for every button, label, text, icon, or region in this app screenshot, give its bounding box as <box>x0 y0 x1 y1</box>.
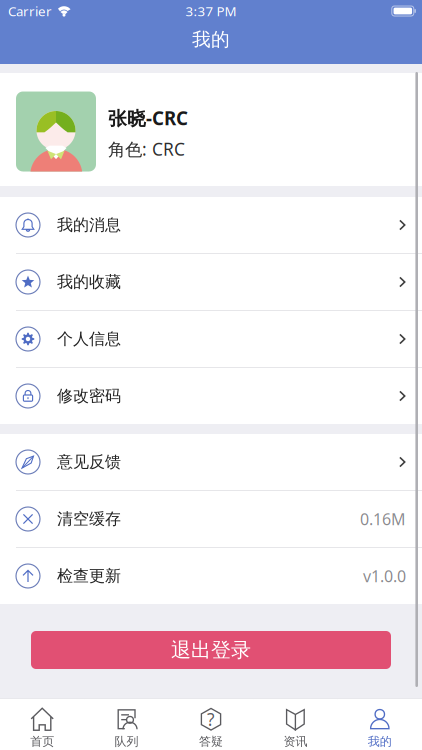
button[interactable]: 我的 <box>338 699 422 750</box>
staticText: 资讯 <box>283 734 307 749</box>
staticText: 0.16M <box>360 508 406 530</box>
button[interactable]: 清空缓存 <box>0 491 422 547</box>
staticText: 答疑 <box>199 734 223 749</box>
button[interactable]: 首页 <box>0 699 84 750</box>
staticText: 意见反馈 <box>57 452 121 472</box>
staticText: 3:37 PM <box>185 2 236 20</box>
staticText: 我的消息 <box>57 215 121 235</box>
staticText: ? <box>207 708 215 731</box>
staticText: 清空缓存 <box>57 509 121 529</box>
staticText: 首页 <box>30 734 54 749</box>
button[interactable]: 资讯 <box>253 699 338 750</box>
staticText: 我的 <box>368 734 392 749</box>
button[interactable]: 退出登录 <box>31 631 391 669</box>
staticText: 我的收藏 <box>57 272 121 292</box>
staticText: 队列 <box>115 734 139 749</box>
staticText: 我的 <box>192 28 230 51</box>
staticText: 修改密码 <box>57 386 121 406</box>
staticText: 角色: CRC <box>108 137 185 160</box>
button[interactable]: 修改密码 <box>0 368 422 424</box>
staticText: 检查更新 <box>57 566 121 586</box>
staticText: 张晓-CRC <box>108 106 188 130</box>
button[interactable]: 我的消息 <box>0 197 422 253</box>
button[interactable]: 意见反馈 <box>0 434 422 490</box>
button[interactable]: 我的收藏 <box>0 254 422 310</box>
button[interactable]: 个人信息 <box>0 311 422 367</box>
staticText: Carrier <box>8 2 52 20</box>
staticText: v1.0.0 <box>363 565 406 587</box>
staticText: 个人信息 <box>57 329 121 349</box>
button[interactable]: 检查更新 <box>0 548 422 604</box>
staticText: 退出登录 <box>171 638 251 662</box>
button[interactable]: 队列 <box>84 699 169 750</box>
button[interactable]: 张晓-CRC <box>0 73 422 186</box>
button[interactable]: ? <box>169 699 253 750</box>
